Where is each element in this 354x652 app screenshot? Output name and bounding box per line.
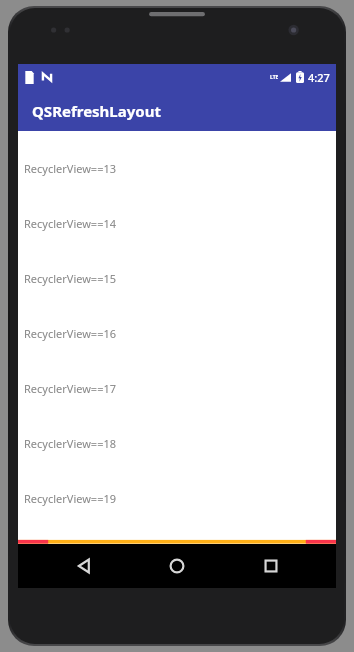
button[interactable]: Back — [56, 544, 112, 588]
staticText: RecyclerView==16 — [24, 326, 117, 341]
button[interactable]: RecyclerView==18 — [18, 416, 336, 471]
staticText: RecyclerView==19 — [24, 491, 117, 506]
button[interactable]: RecyclerView==15 — [18, 251, 336, 306]
button[interactable]: RecyclerView==17 — [18, 361, 336, 416]
staticText: RecyclerView==14 — [24, 216, 117, 231]
button[interactable]: Home — [149, 544, 205, 588]
button[interactable]: QSRefreshLayout — [18, 90, 336, 131]
button[interactable]: RecyclerView==14 — [18, 196, 336, 251]
button[interactable]: Recent apps — [243, 544, 299, 588]
staticText: RecyclerView==13 — [24, 161, 117, 176]
button[interactable]: RecyclerView==16 — [18, 306, 336, 361]
staticText: RecyclerView==18 — [24, 436, 117, 451]
staticText: RecyclerView==17 — [24, 381, 117, 396]
button[interactable]: RecyclerView==13 — [18, 141, 336, 196]
staticText: LTE — [270, 74, 279, 81]
button[interactable]: RecyclerView==19 — [18, 471, 336, 526]
staticText: 4:27 — [308, 70, 330, 85]
staticText: RecyclerView==15 — [24, 271, 117, 286]
staticText: QSRefreshLayout — [32, 101, 161, 121]
